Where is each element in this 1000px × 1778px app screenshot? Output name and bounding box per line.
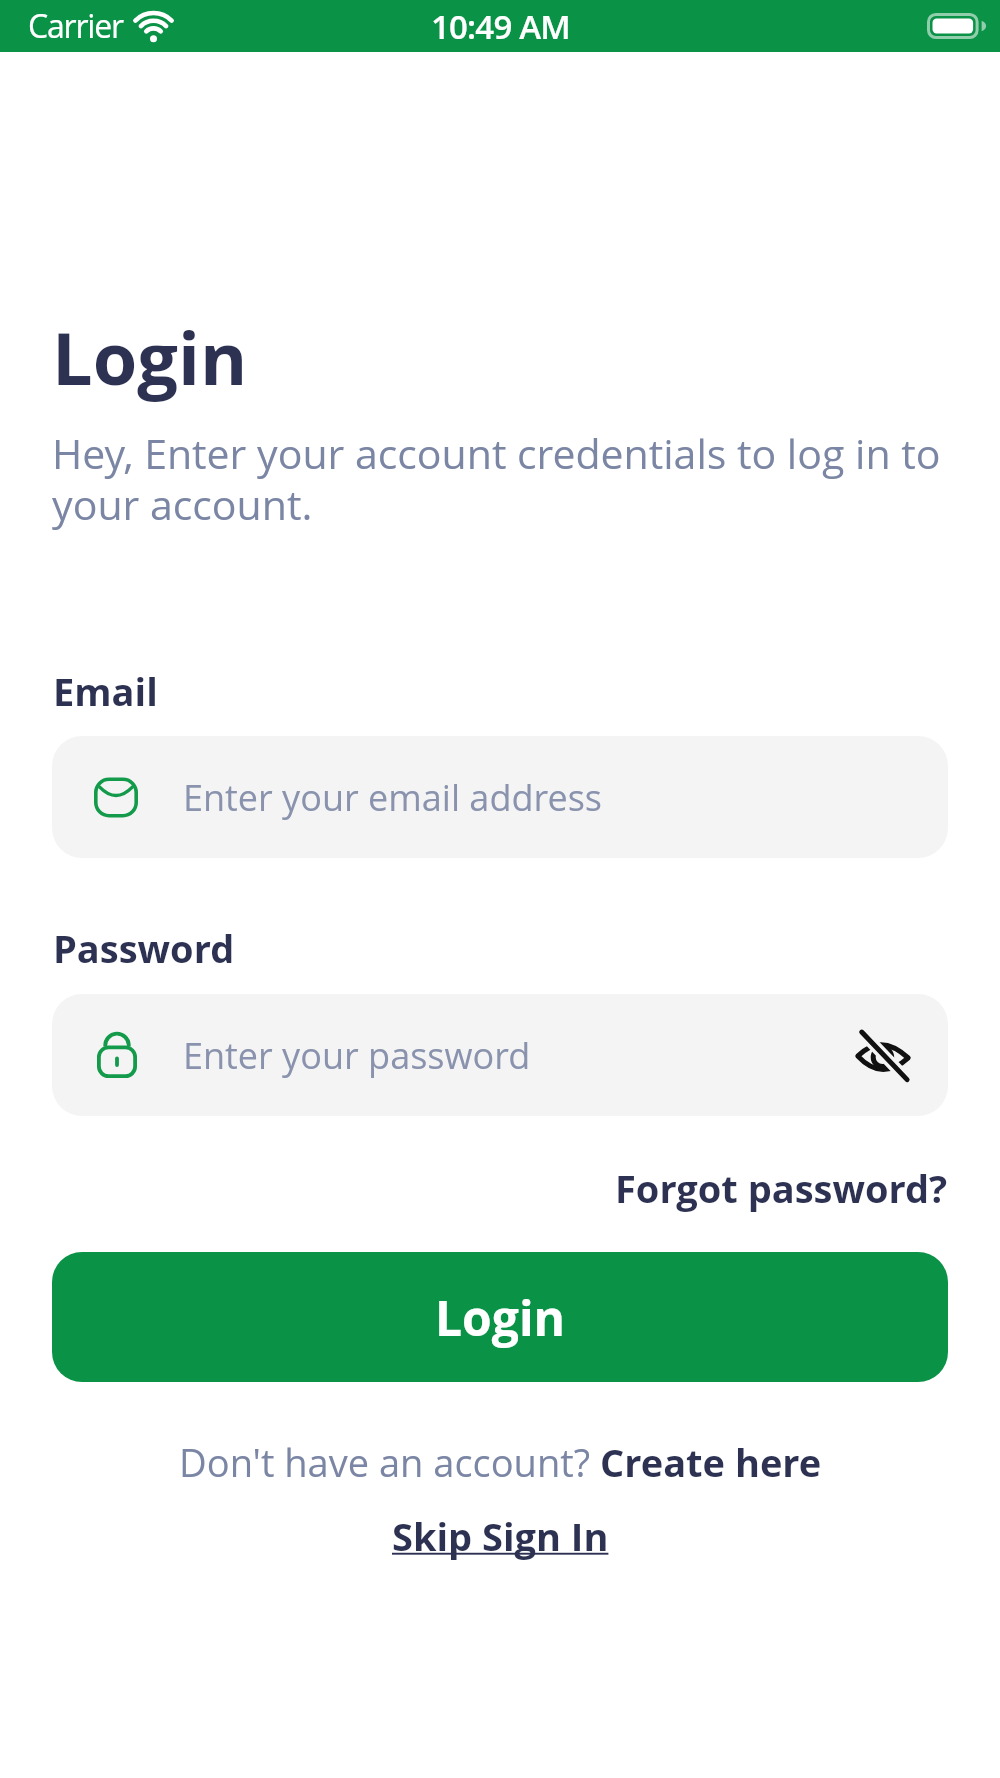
button[interactable] xyxy=(855,1027,911,1083)
staticText: Login xyxy=(52,308,248,406)
staticText: Password xyxy=(53,922,235,974)
staticText: Carrier xyxy=(28,4,123,48)
button[interactable]: Login xyxy=(52,1252,948,1382)
staticText: 10:49 AM xyxy=(431,4,570,49)
staticText: Login xyxy=(435,1285,566,1350)
staticText: Email xyxy=(53,665,158,717)
button[interactable]: Don't have an account? xyxy=(179,1436,822,1488)
staticText: Don't have an account? xyxy=(179,1436,600,1488)
staticText: Enter your password xyxy=(183,1031,531,1080)
staticText: Create here xyxy=(600,1436,822,1488)
button[interactable]: Forgot password? xyxy=(615,1162,948,1214)
button[interactable]: Enter your password xyxy=(52,994,948,1116)
button[interactable]: Skip Sign In xyxy=(392,1510,609,1562)
staticText: Hey, Enter your account credentials to l… xyxy=(52,425,941,532)
button[interactable]: Enter your email address xyxy=(52,736,948,858)
staticText: Enter your email address xyxy=(183,773,603,822)
